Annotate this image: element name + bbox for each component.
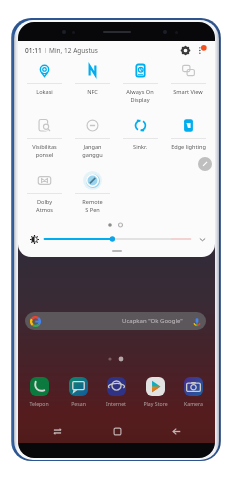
button[interactable]: Jangan ganggu — [68, 113, 116, 168]
button[interactable]: Kamera — [177, 377, 209, 407]
button[interactable]: Internet — [100, 377, 132, 407]
staticText: Edge lighting — [171, 143, 206, 151]
staticText: Sinkr. — [133, 143, 147, 151]
staticText: Kamera — [184, 400, 203, 407]
button[interactable]: Expand — [196, 233, 209, 246]
staticText: Min, 12 Agustus — [49, 46, 98, 55]
staticText: Jangan ganggu — [82, 143, 103, 159]
button[interactable]: Ucapkan "Ok Google" — [25, 312, 206, 330]
button[interactable]: NFC — [68, 58, 116, 113]
button[interactable]: Edit quick settings — [198, 157, 212, 171]
button[interactable]: Visibilitas ponsel — [21, 113, 68, 168]
button[interactable]: Always On Display — [116, 58, 164, 113]
button[interactable] — [164, 168, 212, 223]
staticText: Lokasi — [36, 88, 53, 96]
button[interactable]: Telepon — [23, 377, 55, 407]
button[interactable]: More options — [195, 43, 210, 58]
button[interactable]: Recents — [37, 423, 77, 439]
button[interactable]: Sinkr. — [116, 113, 164, 168]
button[interactable]: Dolby Atmos — [21, 168, 68, 223]
staticText: Pesan — [71, 400, 86, 407]
button[interactable]: Settings — [178, 43, 193, 58]
button[interactable]: Back — [156, 423, 196, 439]
staticText: Visibilitas ponsel — [32, 143, 57, 159]
staticText: NFC — [87, 88, 98, 96]
button[interactable]: Lokasi — [21, 58, 68, 113]
button[interactable]: Home — [97, 423, 137, 439]
staticText: 01:11 — [25, 46, 42, 55]
staticText: Internet — [106, 400, 126, 407]
button[interactable]: Remote S Pen — [68, 168, 116, 223]
button[interactable]: Smart View — [164, 58, 212, 113]
staticText: Ucapkan "Ok Google" — [122, 317, 183, 325]
staticText: Smart View — [173, 88, 203, 96]
staticText: Dolby Atmos — [36, 198, 53, 214]
staticText: Remote S Pen — [82, 198, 103, 214]
button[interactable]: Pesan — [62, 377, 94, 407]
staticText: Telepon — [29, 400, 49, 407]
button[interactable]: Play Store — [139, 377, 171, 407]
staticText: Play Store — [143, 400, 168, 407]
staticText: Always On Display — [126, 88, 154, 104]
button[interactable]: Edge lighting — [164, 113, 212, 168]
